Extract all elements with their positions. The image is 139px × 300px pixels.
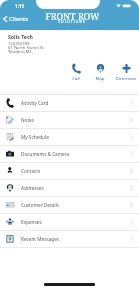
staticText: Directions xyxy=(114,75,138,81)
button[interactable]: Recent Messages xyxy=(0,231,139,247)
other: Call xyxy=(72,64,81,73)
button[interactable]: Directions xyxy=(114,64,138,79)
staticText: Customer Details xyxy=(21,202,59,208)
button[interactable]: Expenses xyxy=(0,214,139,230)
staticText: Addresses xyxy=(21,185,44,191)
button[interactable]: Notes xyxy=(0,112,139,128)
staticText: Solis Tech xyxy=(8,33,33,40)
staticText: Activity Card xyxy=(21,100,49,106)
other: Directions xyxy=(122,64,131,73)
button[interactable]: Call xyxy=(64,64,88,79)
button[interactable]: Documents & Camera xyxy=(0,146,139,162)
staticText: Ypsilanti,MI , xyxy=(8,49,34,55)
button[interactable]: Customer Details xyxy=(0,197,139,213)
staticText: 1:11 xyxy=(15,3,25,9)
button[interactable]: My Schedule xyxy=(0,129,139,145)
button[interactable]: Map xyxy=(88,64,112,79)
staticText: SOLUTIONS xyxy=(45,20,99,24)
staticText: Clients xyxy=(9,15,29,23)
staticText: Map xyxy=(88,75,112,81)
button[interactable]: Addresses xyxy=(0,180,139,196)
staticText: Expenses xyxy=(21,219,42,225)
staticText: My Schedule xyxy=(21,134,49,140)
staticText: Recent Messages xyxy=(21,236,60,242)
staticText: 61 North Huron St xyxy=(8,45,44,51)
button[interactable]: Clients xyxy=(2,15,28,23)
staticText: Documents & Camera xyxy=(21,151,70,157)
staticText: Notes xyxy=(21,117,34,123)
staticText: 123356788 xyxy=(8,41,30,47)
staticText: Call xyxy=(64,75,88,81)
button[interactable]: Activity Card xyxy=(0,95,139,111)
staticText: Contacts xyxy=(21,168,41,174)
other: Map xyxy=(96,64,105,73)
button[interactable]: Contacts xyxy=(0,163,139,179)
staticText: FRONT ROW xyxy=(45,10,99,22)
